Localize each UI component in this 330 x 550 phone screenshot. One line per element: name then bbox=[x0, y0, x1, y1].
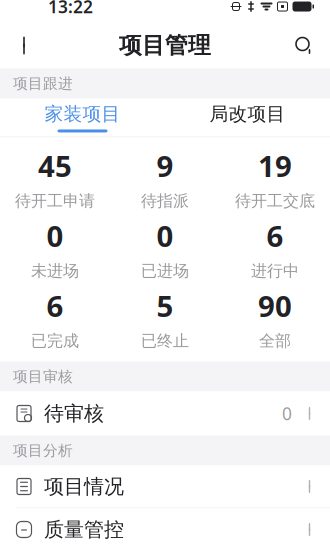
button[interactable]: 局改项目 bbox=[165, 98, 330, 136]
button[interactable]: 90 bbox=[220, 283, 330, 353]
button[interactable]: 项目情况 bbox=[0, 465, 330, 507]
staticText: 已完成 bbox=[31, 331, 79, 351]
staticText: 待开工交底 bbox=[235, 191, 315, 211]
button[interactable]: 待审核 bbox=[0, 391, 330, 435]
button[interactable]: 6 bbox=[0, 283, 110, 353]
staticText: 5 bbox=[156, 286, 173, 325]
button[interactable]: 45 bbox=[0, 143, 110, 213]
staticText: 9 bbox=[156, 146, 173, 185]
staticText: 待开工申请 bbox=[15, 191, 95, 211]
staticText: 13:22 bbox=[48, 0, 93, 18]
button[interactable]: 6 bbox=[220, 213, 330, 283]
staticText: 项目审核 bbox=[13, 367, 73, 385]
button[interactable]: 家装项目 bbox=[0, 98, 165, 136]
button[interactable]: 9 bbox=[110, 143, 220, 213]
button[interactable]: 搜索 bbox=[282, 23, 326, 67]
staticText: 6 bbox=[266, 216, 283, 255]
button[interactable]: 0 bbox=[110, 213, 220, 283]
staticText: 0 bbox=[282, 402, 292, 425]
staticText: 项目跟进 bbox=[13, 74, 73, 92]
staticText: 项目分析 bbox=[13, 441, 73, 459]
staticText: 90 bbox=[258, 286, 292, 325]
staticText: 已终止 bbox=[141, 331, 189, 351]
staticText: 0 bbox=[46, 216, 63, 255]
staticText: 待审核 bbox=[44, 401, 104, 426]
button[interactable]: 5 bbox=[110, 283, 220, 353]
staticText: 未进场 bbox=[31, 261, 79, 281]
staticText: 进行中 bbox=[251, 261, 299, 281]
button[interactable]: 19 bbox=[220, 143, 330, 213]
staticText: 已进场 bbox=[141, 261, 189, 281]
staticText: 0 bbox=[156, 216, 173, 255]
staticText: 全部 bbox=[259, 331, 291, 351]
staticText: 19 bbox=[258, 146, 292, 185]
staticText: 45 bbox=[38, 146, 72, 185]
staticText: 家装项目 bbox=[44, 102, 120, 125]
staticText: 质量管控 bbox=[44, 517, 124, 542]
staticText: 项目情况 bbox=[44, 474, 124, 499]
button[interactable]: 0 bbox=[0, 213, 110, 283]
staticText: 局改项目 bbox=[209, 102, 285, 125]
button[interactable]: 返回 bbox=[4, 23, 48, 67]
staticText: 6 bbox=[46, 286, 63, 325]
button[interactable]: 质量管控 bbox=[0, 508, 330, 550]
staticText: 待指派 bbox=[141, 191, 189, 211]
staticText: 项目管理 bbox=[119, 32, 211, 59]
